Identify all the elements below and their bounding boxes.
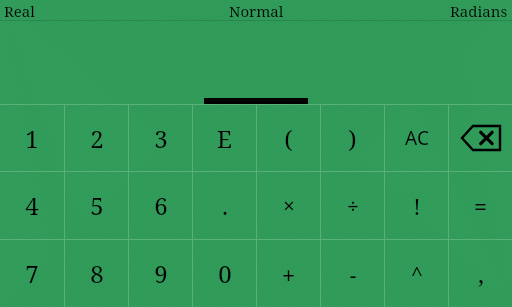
staticText: 5 bbox=[90, 189, 104, 222]
button[interactable]: + bbox=[257, 240, 320, 307]
staticText: ÷ bbox=[347, 192, 359, 219]
staticText: 6 bbox=[154, 189, 168, 222]
staticText: E bbox=[217, 122, 232, 155]
button[interactable]: 6 bbox=[129, 172, 192, 239]
staticText: ^ bbox=[411, 260, 423, 287]
button[interactable]: = bbox=[449, 172, 512, 239]
button[interactable]: 5 bbox=[65, 172, 128, 239]
button[interactable]: E bbox=[193, 105, 256, 171]
button[interactable]: 9 bbox=[129, 240, 192, 307]
button[interactable]: 3 bbox=[129, 105, 192, 171]
staticText: 7 bbox=[25, 257, 39, 290]
staticText: , bbox=[478, 257, 484, 290]
button[interactable]: 1 bbox=[0, 105, 64, 171]
staticText: × bbox=[283, 192, 295, 219]
staticText: ( bbox=[284, 122, 293, 155]
button[interactable]: - bbox=[321, 240, 384, 307]
staticText: 1 bbox=[25, 122, 39, 155]
button[interactable]: ) bbox=[321, 105, 384, 171]
staticText: = bbox=[474, 191, 487, 221]
button[interactable]: AC bbox=[385, 105, 448, 171]
button[interactable]: × bbox=[257, 172, 320, 239]
staticText: ) bbox=[348, 122, 357, 155]
button[interactable]: 8 bbox=[65, 240, 128, 307]
staticText: - bbox=[349, 259, 357, 289]
staticText: AC bbox=[405, 125, 429, 151]
button[interactable]: 2 bbox=[65, 105, 128, 171]
button[interactable]: 0 bbox=[193, 240, 256, 307]
button[interactable]: ! bbox=[385, 172, 448, 239]
button[interactable]: 7 bbox=[0, 240, 64, 307]
button[interactable]: Backspace bbox=[449, 105, 512, 171]
staticText: 3 bbox=[154, 122, 168, 155]
button[interactable]: 4 bbox=[0, 172, 64, 239]
button[interactable]: , bbox=[449, 240, 512, 307]
staticText: Real bbox=[4, 1, 35, 21]
button[interactable]: . bbox=[193, 172, 256, 239]
staticText: 8 bbox=[90, 257, 104, 290]
button[interactable]: Real bbox=[4, 0, 172, 21]
staticText: 9 bbox=[154, 257, 168, 290]
button[interactable]: ÷ bbox=[321, 172, 384, 239]
staticText: ! bbox=[414, 191, 420, 221]
button[interactable]: ( bbox=[257, 105, 320, 171]
staticText: 0 bbox=[218, 257, 232, 290]
staticText: Radians bbox=[450, 1, 508, 21]
staticText: Normal bbox=[229, 1, 284, 21]
button[interactable]: ^ bbox=[385, 240, 448, 307]
staticText: . bbox=[222, 189, 228, 222]
staticText: 2 bbox=[90, 122, 104, 155]
button[interactable]: Normal bbox=[172, 0, 340, 21]
staticText: + bbox=[282, 259, 295, 289]
staticText: 4 bbox=[25, 189, 39, 222]
button[interactable]: Radians bbox=[340, 0, 508, 21]
